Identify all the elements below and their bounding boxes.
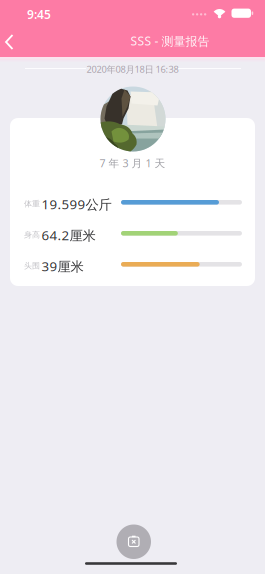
staticText: SSS - 测量报告 <box>130 33 209 49</box>
button[interactable]: Back <box>0 27 22 57</box>
staticText: 39厘米 <box>41 257 83 275</box>
staticText: 19.599公斤 <box>41 195 111 213</box>
staticText: 9:45 <box>27 6 51 22</box>
staticText: 64.2厘米 <box>41 226 95 244</box>
button[interactable]: Screenshot <box>116 524 151 559</box>
staticText: 2020年08月18日 16:38 <box>86 63 178 75</box>
staticText: 身高 <box>24 230 40 240</box>
staticText: 7 年 3 月 1 天 <box>99 156 165 170</box>
staticText: 体重 <box>24 199 40 209</box>
staticText: 头围 <box>24 261 40 271</box>
